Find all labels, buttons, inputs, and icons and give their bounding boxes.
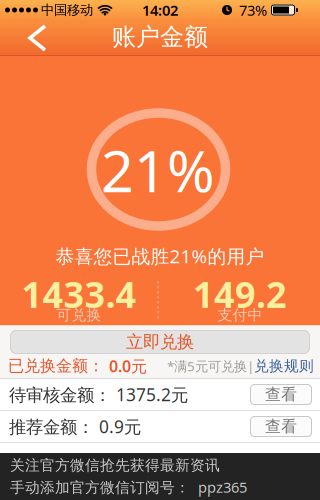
staticText: 推荐金额： 0.9元 — [9, 415, 141, 438]
staticText: 立即兑换 — [126, 331, 194, 353]
staticText: 14:02 — [142, 0, 178, 20]
staticText: 恭喜您已战胜21%的用户 — [55, 244, 264, 268]
button[interactable]: 返回 — [0, 21, 61, 55]
staticText: 支付中 — [217, 306, 262, 324]
staticText: 查看 — [265, 417, 297, 436]
staticText: 21% — [101, 132, 215, 208]
staticText: 中国移动 — [41, 2, 93, 18]
staticText: 查看 — [265, 385, 297, 404]
staticText: 已兑换金额： — [8, 356, 109, 376]
button[interactable]: 兑换规则 — [254, 357, 314, 375]
staticText: *满5元可兑换| — [167, 357, 254, 375]
staticText: 73% — [239, 0, 267, 20]
staticText: 待审核金额： 1375.2元 — [9, 383, 188, 406]
button[interactable]: 查看 — [250, 416, 312, 437]
staticText: 0.0元 — [109, 355, 147, 377]
button[interactable]: 立即兑换 — [10, 330, 310, 354]
staticText: 可兑换 — [56, 306, 101, 324]
staticText: 账户金额 — [112, 22, 208, 52]
staticText: 149.2 — [193, 270, 287, 318]
staticText: 关注官方微信抢先获得最新资讯 — [10, 456, 220, 474]
staticText: 兑换规则 — [254, 357, 314, 375]
button[interactable]: 查看 — [250, 384, 312, 405]
staticText: 手动添加官方微信订阅号： ppz365 — [10, 477, 247, 497]
staticText: 1433.4 — [21, 270, 136, 318]
